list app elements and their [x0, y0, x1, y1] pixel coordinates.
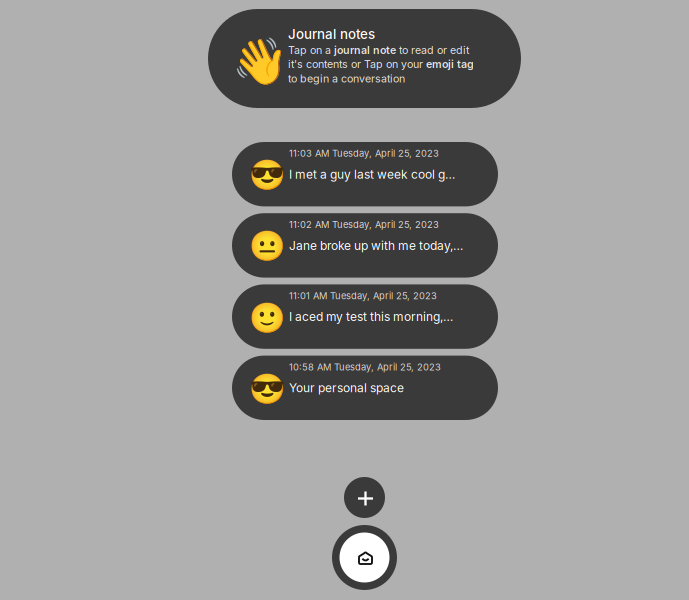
staticText: Jane broke up with me today,…: [289, 238, 463, 253]
staticText: 😐: [248, 229, 285, 264]
staticText: 🙂: [248, 300, 285, 335]
button[interactable]: 🙂: [232, 284, 498, 349]
staticText: 👋: [232, 35, 288, 88]
staticText: it's contents or Tap on your emoji tag: [288, 58, 474, 70]
staticText: Your personal space: [289, 381, 404, 395]
staticText: to begin a conversation: [288, 72, 405, 85]
staticText: 11:03 AM Tuesday, April 25, 2023: [289, 148, 439, 159]
staticText: 10:58 AM Tuesday, April 25, 2023: [289, 361, 441, 373]
button[interactable]: Home: [332, 525, 397, 590]
button[interactable]: 😎: [232, 142, 498, 206]
button[interactable]: New journal note: [344, 477, 385, 518]
staticText: I met a guy last week cool g…: [289, 167, 455, 182]
staticText: 11:01 AM Tuesday, April 25, 2023: [289, 290, 437, 301]
staticText: 😎: [248, 158, 285, 192]
staticText: 11:02 AM Tuesday, April 25, 2023: [289, 219, 439, 230]
button[interactable]: 😐: [232, 213, 498, 278]
staticText: I aced my test this morning,…: [289, 309, 453, 324]
staticText: 😎: [248, 372, 285, 406]
button[interactable]: 😎: [232, 356, 498, 420]
staticText: Tap on a journal note to read or edit: [288, 44, 469, 56]
staticText: Journal notes: [288, 26, 375, 42]
